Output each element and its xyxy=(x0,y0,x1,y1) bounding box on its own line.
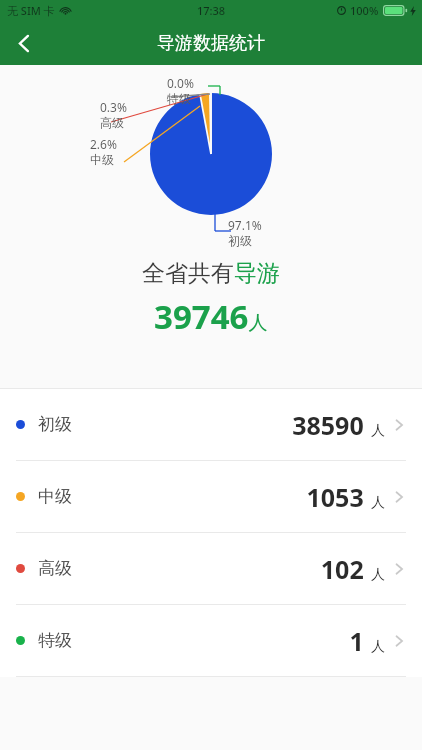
staticText: 100% xyxy=(350,3,379,18)
staticText: 0.3% xyxy=(100,99,127,115)
staticText: 特级 xyxy=(167,91,191,106)
button[interactable]: 初级 xyxy=(0,389,422,460)
button[interactable]: 高级 xyxy=(0,533,422,604)
staticText: 0.0% xyxy=(167,75,194,91)
button[interactable]: 返回 xyxy=(0,21,48,65)
staticText: 无 SIM 卡 xyxy=(7,3,55,18)
staticText: 初级 xyxy=(228,233,252,248)
staticText: 102 人 xyxy=(320,552,385,586)
staticText: 39746人 xyxy=(154,294,268,339)
staticText: 高级 xyxy=(38,558,72,579)
staticText: 初级 xyxy=(38,414,72,435)
staticText: 中级 xyxy=(90,152,114,167)
staticText: 38590 人 xyxy=(292,408,385,442)
staticText: 特级 xyxy=(38,630,72,651)
staticText: 1 人 xyxy=(349,624,385,658)
button[interactable]: 特级 xyxy=(0,605,422,676)
staticText: 高级 xyxy=(100,115,124,130)
staticText: 中级 xyxy=(38,486,72,507)
staticText: 2.6% xyxy=(90,136,117,152)
staticText: 1053 人 xyxy=(306,480,385,514)
staticText: 17:38 xyxy=(197,3,226,18)
button[interactable]: 中级 xyxy=(0,461,422,532)
staticText: 导游数据统计 xyxy=(157,32,265,55)
staticText: 全省共有导游 xyxy=(142,259,280,288)
staticText: 97.1% xyxy=(228,217,262,233)
